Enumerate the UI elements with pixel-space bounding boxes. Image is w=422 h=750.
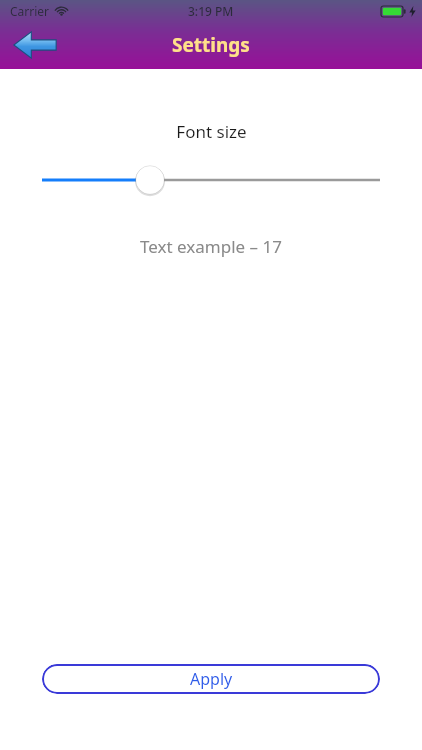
staticText: Apply — [190, 668, 233, 690]
button[interactable]: Apply — [42, 664, 380, 694]
button[interactable]: Font size slider — [0, 163, 422, 197]
staticText: Settings — [172, 32, 250, 58]
staticText: Text example – 17 — [140, 235, 282, 258]
staticText: Carrier — [10, 3, 50, 19]
staticText: 3:19 PM — [188, 3, 234, 19]
staticText: Font size — [176, 120, 247, 143]
button[interactable]: Back — [10, 28, 60, 62]
